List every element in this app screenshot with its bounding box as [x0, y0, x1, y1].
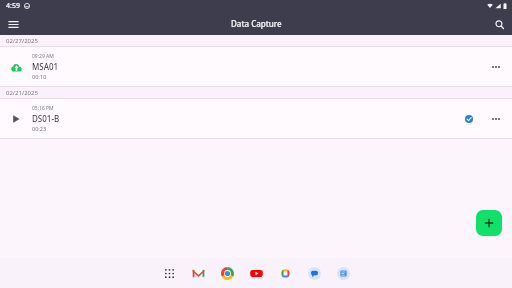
staticText: 00:23	[32, 125, 47, 132]
button[interactable]: Gmail	[190, 265, 206, 281]
button[interactable]: Play	[0, 99, 512, 139]
button[interactable]: More options	[486, 109, 506, 129]
button[interactable]: More options	[486, 57, 506, 77]
button[interactable]: Play	[6, 109, 26, 129]
button[interactable]: Messages	[306, 265, 322, 281]
staticText: 02/27/2025	[6, 37, 38, 45]
staticText: 4:59	[6, 1, 20, 11]
staticText: DS01-B	[32, 113, 60, 124]
staticText: 09:29 AM	[32, 53, 54, 60]
button[interactable]: All apps	[161, 265, 177, 281]
staticText: MSA01	[32, 61, 59, 72]
staticText: Data Capture	[231, 18, 282, 29]
button[interactable]: Keep Notes	[335, 265, 351, 281]
button[interactable]: Upload	[0, 47, 512, 87]
staticText: 00:10	[32, 73, 47, 80]
button[interactable]: Uploaded	[460, 110, 478, 128]
button[interactable]: Photos	[277, 265, 293, 281]
staticText: 05:16 PM	[32, 105, 54, 112]
button[interactable]: Chrome	[219, 265, 235, 281]
button[interactable]: YouTube	[248, 265, 264, 281]
staticText: 02/21/2025	[6, 89, 38, 97]
button[interactable]: Add capture	[476, 210, 502, 236]
button[interactable]: Upload	[6, 57, 26, 77]
button[interactable]: Open navigation menu	[4, 15, 22, 33]
button[interactable]: Search	[490, 15, 508, 33]
